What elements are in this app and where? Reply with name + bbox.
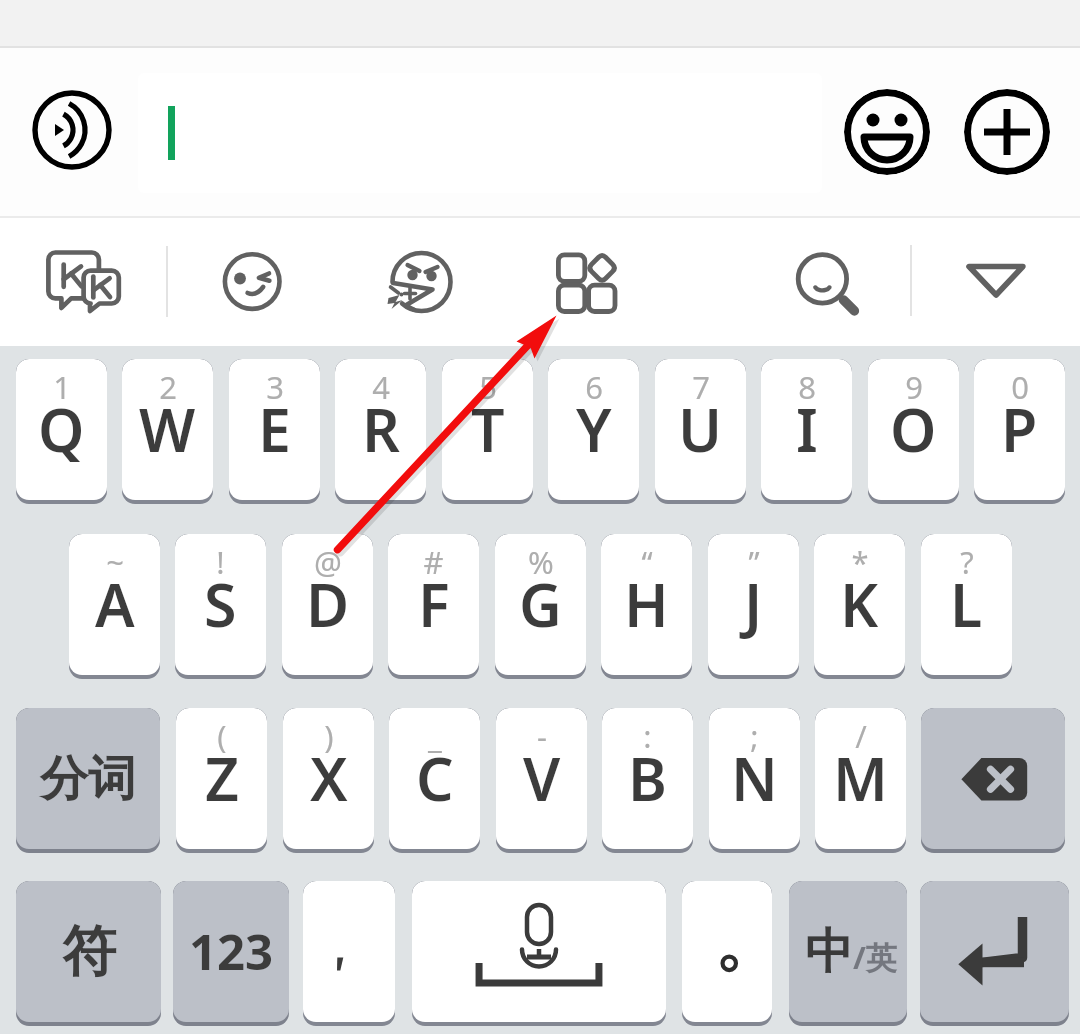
staticText: L — [950, 564, 983, 644]
staticText: J — [744, 564, 763, 644]
staticText: V — [523, 738, 561, 818]
button[interactable]: ~ — [69, 534, 160, 679]
staticText: R — [362, 389, 400, 469]
staticText: - — [537, 715, 547, 757]
button[interactable] — [138, 73, 822, 193]
button[interactable]: Period — [682, 881, 772, 1026]
staticText: N — [731, 738, 778, 818]
button[interactable]: Enter — [920, 881, 1069, 1026]
button[interactable]: 7 — [655, 359, 746, 504]
button[interactable]: Comma — [303, 881, 395, 1026]
staticText: : — [643, 715, 652, 757]
staticText: 1 — [53, 366, 71, 408]
button[interactable]: 8 — [761, 359, 852, 504]
button[interactable]: Backspace — [921, 708, 1065, 853]
button[interactable]: _ — [389, 708, 480, 853]
staticText: 7 — [692, 366, 710, 408]
button[interactable]: 2 — [122, 359, 213, 504]
button[interactable]: 6 — [548, 359, 639, 504]
button[interactable]: Voice input — [27, 85, 117, 175]
button[interactable]: Search — [783, 238, 871, 326]
button[interactable]: # — [388, 534, 479, 679]
staticText: P — [1001, 389, 1038, 469]
button[interactable]: 4 — [335, 359, 426, 504]
staticText: H — [624, 564, 669, 644]
staticText: I — [796, 389, 818, 469]
button[interactable]: * — [814, 534, 905, 679]
button[interactable]: ; — [709, 708, 800, 853]
button[interactable]: Hide keyboard — [956, 246, 1036, 308]
button[interactable]: ? — [921, 534, 1012, 679]
button[interactable]: - — [496, 708, 587, 853]
staticText: / — [855, 715, 867, 757]
button[interactable]: ( — [176, 708, 267, 853]
staticText: C — [416, 738, 454, 818]
staticText: 8 — [798, 366, 816, 408]
button[interactable]: % — [495, 534, 586, 679]
staticText: /英 — [853, 936, 897, 978]
staticText: @ — [314, 541, 342, 583]
button[interactable]: ) — [283, 708, 374, 853]
staticText: 0 — [1011, 366, 1029, 408]
button[interactable]: Add — [964, 89, 1050, 175]
staticText: 分词 — [40, 749, 136, 809]
button[interactable]: Keyboard themes — [46, 250, 122, 312]
staticText: % — [528, 541, 554, 583]
staticText: “ — [641, 541, 653, 583]
button[interactable]: Stickers — [207, 238, 295, 326]
staticText: 9 — [905, 366, 923, 408]
button[interactable]: : — [602, 708, 693, 853]
staticText: 5 — [479, 366, 497, 408]
staticText: M — [833, 738, 888, 818]
button[interactable]: 3 — [229, 359, 320, 504]
button[interactable]: 123 — [173, 881, 289, 1026]
staticText: X — [310, 738, 348, 818]
staticText: ~ — [106, 541, 124, 583]
staticText: O — [890, 389, 937, 469]
staticText: 123 — [189, 918, 274, 985]
staticText: W — [139, 389, 196, 469]
staticText: D — [306, 564, 350, 644]
staticText: Z — [205, 738, 239, 818]
staticText: F — [418, 564, 450, 644]
button[interactable]: Emoticons — [361, 238, 469, 338]
button[interactable]: / — [815, 708, 906, 853]
staticText: A — [95, 564, 135, 644]
button[interactable]: 符 — [16, 881, 161, 1026]
staticText: K — [840, 564, 879, 644]
button[interactable]: ” — [708, 534, 799, 679]
staticText: _ — [428, 715, 442, 757]
button[interactable]: 1 — [16, 359, 107, 504]
button[interactable]: Space — [412, 881, 666, 1026]
staticText: 中 — [805, 922, 853, 982]
button[interactable]: 0 — [974, 359, 1065, 504]
staticText: 4 — [372, 366, 390, 408]
staticText: 2 — [159, 366, 177, 408]
button[interactable]: 9 — [868, 359, 959, 504]
staticText: U — [678, 389, 723, 469]
button[interactable]: More apps — [551, 241, 627, 317]
staticText: 3 — [266, 366, 284, 408]
staticText: ? — [960, 541, 974, 583]
staticText: ” — [748, 541, 760, 583]
staticText: S — [204, 564, 237, 644]
staticText: ( — [217, 715, 227, 757]
staticText: 符 — [62, 918, 116, 986]
button[interactable]: @ — [282, 534, 373, 679]
staticText: B — [628, 738, 667, 818]
staticText: # — [423, 541, 444, 583]
staticText: Y — [576, 389, 612, 469]
button[interactable]: 5 — [442, 359, 533, 504]
button[interactable]: 中 — [789, 881, 907, 1026]
staticText: Q — [38, 389, 85, 469]
button[interactable]: Emoji — [844, 89, 930, 175]
staticText: 6 — [585, 366, 603, 408]
staticText: ! — [216, 541, 225, 583]
button[interactable]: “ — [601, 534, 692, 679]
button[interactable]: 分词 — [16, 708, 160, 853]
button[interactable]: ! — [175, 534, 266, 679]
staticText: * — [851, 541, 869, 583]
staticText: E — [258, 389, 291, 469]
staticText: ; — [750, 715, 759, 757]
staticText: ) — [324, 715, 334, 757]
